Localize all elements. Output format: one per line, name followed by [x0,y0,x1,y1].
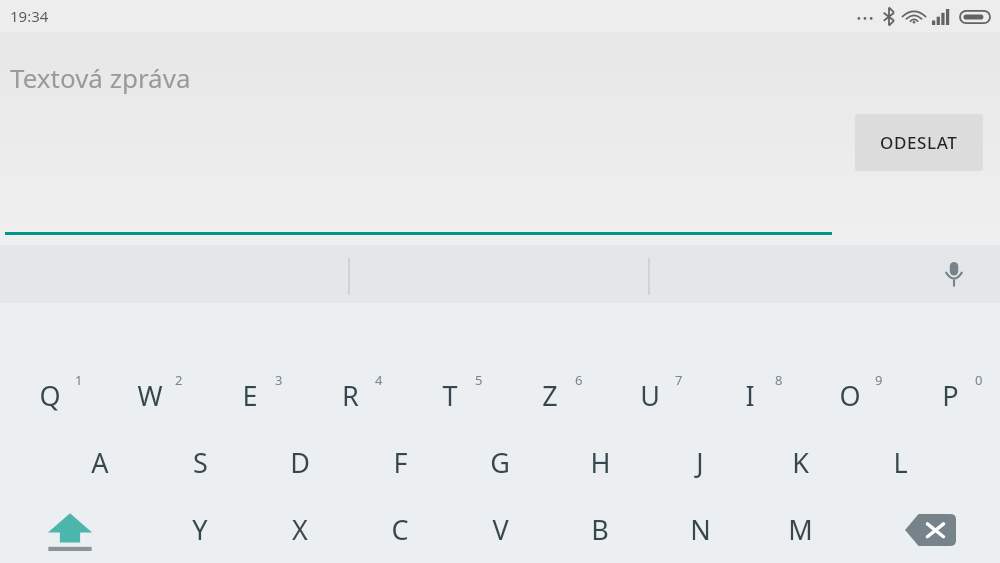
staticText: Textová zpráva [10,60,191,95]
button[interactable]: T [400,369,500,421]
button[interactable]: ODESLAT [855,114,983,171]
button[interactable]: G [450,436,550,488]
button[interactable]: A [50,436,150,488]
staticText: P [942,377,959,414]
staticText: 2 [175,371,183,389]
staticText: 1 [75,371,83,389]
staticText: 6 [575,371,583,389]
staticText: O [839,377,861,414]
staticText: A [91,444,109,481]
button[interactable]: V [450,503,550,555]
staticText: 0 [975,371,983,389]
button[interactable]: B [550,503,650,555]
staticText: W [137,377,163,414]
staticText: U [640,377,660,414]
staticText: J [696,444,704,481]
staticText: M [788,511,813,548]
button[interactable]: F [350,436,450,488]
staticText: V [492,511,509,548]
staticText: D [290,444,310,481]
button[interactable]: M [750,503,850,555]
staticText: X [292,511,308,548]
button[interactable]: Z [500,369,600,421]
button[interactable]: S [150,436,250,488]
staticText: B [591,511,609,548]
staticText: 3 [275,371,283,389]
button[interactable]: Shift [20,499,120,561]
button[interactable]: I [700,369,800,421]
button[interactable]: O [800,369,900,421]
button[interactable]: N [650,503,750,555]
staticText: 4 [375,371,383,389]
staticText: T [442,377,458,414]
staticText: G [490,444,510,481]
staticText: I [745,377,755,414]
button[interactable]: J [650,436,750,488]
staticText: H [590,444,611,481]
button[interactable]: R [300,369,400,421]
staticText: 9 [875,371,883,389]
button[interactable]: X [250,503,350,555]
button[interactable]: E [200,369,300,421]
button[interactable]: Backspace [880,499,980,561]
staticText: F [393,444,408,481]
button[interactable]: W [100,369,200,421]
staticText: ODESLAT [880,131,958,154]
button[interactable]: H [550,436,650,488]
staticText: R [342,377,359,414]
staticText: 8 [775,371,783,389]
staticText: 19:34 [10,6,49,26]
staticText: E [242,377,258,414]
button[interactable]: Q [0,369,100,421]
staticText: N [690,511,711,548]
button[interactable]: L [850,436,950,488]
staticText: K [792,444,809,481]
button[interactable]: Y [150,503,250,555]
staticText: C [391,511,409,548]
staticText: Z [542,377,558,414]
button[interactable]: K [750,436,850,488]
staticText: S [193,444,208,481]
staticText: L [893,444,908,481]
button[interactable]: C [350,503,450,555]
staticText: 7 [675,371,683,389]
staticText: Y [192,511,208,548]
staticText: 5 [475,371,483,389]
staticText: Q [39,377,61,414]
button[interactable]: P [900,369,1000,421]
button[interactable]: D [250,436,350,488]
button[interactable]: Voice input [928,248,980,300]
button[interactable]: U [600,369,700,421]
